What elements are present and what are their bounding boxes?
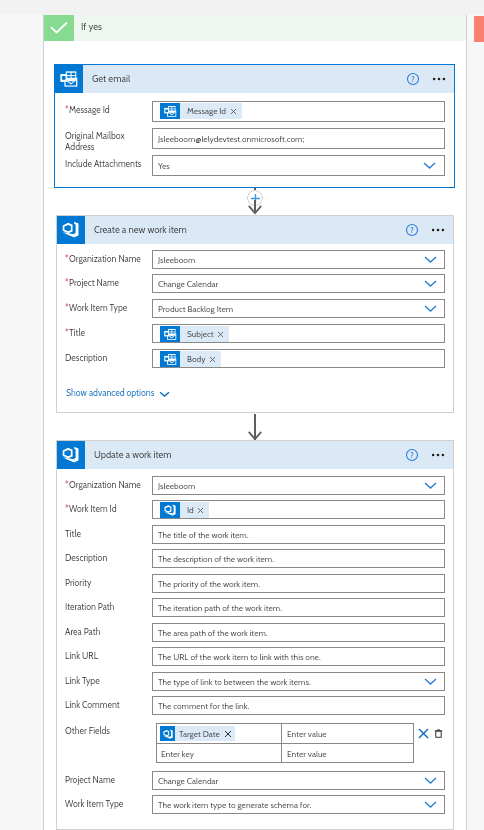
staticText: * (65, 328, 69, 339)
staticText: If yes (81, 21, 102, 32)
staticText: * (65, 480, 69, 491)
button[interactable]: Clear (416, 726, 430, 740)
staticText: Organization Name (69, 254, 141, 265)
staticText: ? (411, 74, 415, 84)
staticText: Jsleeboom@lelydevtest.onmicrosoft.com; (158, 134, 305, 144)
button[interactable]: Insert a new step (247, 190, 263, 206)
staticText: Link Comment (65, 700, 120, 711)
staticText: ? (410, 450, 414, 460)
staticText: Area Path (65, 627, 101, 638)
staticText: * (65, 278, 69, 289)
button[interactable]: Body (152, 349, 445, 368)
staticText: Project Name (65, 775, 116, 786)
staticText: Create a new work item (94, 224, 187, 235)
staticText: Jsleeboom (158, 255, 196, 265)
button[interactable]: Yes (152, 155, 445, 176)
button[interactable]: The description of the work item. (152, 549, 445, 568)
staticText: Subject (187, 329, 214, 339)
button[interactable]: Help (403, 69, 423, 89)
staticText: Change Calendar (158, 776, 219, 786)
staticText: Enter value (287, 749, 327, 759)
button[interactable]: The URL of the work item to link with th… (152, 647, 445, 666)
staticText: Include Attachments (65, 159, 142, 170)
staticText: Message Id (69, 105, 110, 116)
staticText: Target Date (179, 729, 220, 739)
button[interactable]: The work item type to generate schema fo… (152, 795, 445, 814)
button[interactable]: The priority of the work item. (152, 574, 445, 593)
staticText: Work Item Type (69, 303, 128, 314)
button[interactable]: More options (428, 220, 448, 240)
button[interactable]: Jsleeboom (152, 476, 445, 495)
button[interactable]: Help (402, 220, 422, 240)
staticText: Other Fields (65, 726, 110, 737)
staticText: * (65, 504, 69, 515)
button[interactable]: Message Id (152, 101, 445, 122)
staticText: Change Calendar (158, 279, 219, 289)
button[interactable]: The area path of the work item. (152, 623, 445, 642)
button[interactable]: More options (429, 69, 449, 89)
staticText: The URL of the work item to link with th… (158, 652, 321, 662)
button[interactable]: The comment for the link. (152, 696, 445, 715)
button[interactable]: Jsleeboom (152, 250, 445, 269)
staticText: Priority (65, 578, 92, 589)
staticText: Enter key (161, 749, 194, 759)
staticText: The title of the work item. (158, 530, 249, 540)
staticText: The description of the work item. (158, 554, 274, 564)
staticText: The comment for the link. (158, 701, 250, 711)
staticText: Work Item Type (65, 799, 124, 810)
button[interactable] (44, 15, 466, 41)
button[interactable]: Product Backlog Item (152, 299, 445, 318)
staticText: Id (187, 505, 194, 515)
staticText: Message Id (187, 106, 227, 116)
button[interactable]: The title of the work item. (152, 525, 445, 544)
staticText: Original Mailbox (65, 131, 125, 142)
staticText: Organization Name (69, 480, 141, 491)
staticText: The iteration path of the work item. (158, 603, 282, 613)
staticText: Description (65, 553, 108, 564)
button[interactable]: Get email (54, 64, 455, 93)
staticText: ? (410, 225, 414, 235)
button[interactable]: Show advanced options (66, 388, 169, 399)
staticText: Description (65, 353, 108, 364)
staticText: Yes (158, 161, 170, 171)
button[interactable]: Subject (152, 324, 445, 343)
staticText: Get email (92, 73, 131, 84)
staticText: Project Name (69, 278, 120, 289)
staticText: Address (65, 142, 95, 153)
button[interactable]: The iteration path of the work item. (152, 598, 445, 617)
staticText: Body (187, 354, 206, 364)
button[interactable]: Change Calendar (152, 274, 445, 293)
button[interactable]: More options (428, 445, 448, 465)
staticText: * (65, 105, 69, 116)
staticText: Link Type (65, 676, 100, 687)
staticText: Title (69, 328, 85, 339)
button[interactable]: Id (152, 500, 445, 519)
staticText: Update a work item (94, 449, 172, 460)
staticText: Work Item Id (69, 504, 117, 515)
staticText: Link URL (65, 651, 99, 662)
button[interactable]: The type of link to between the work ite… (152, 672, 445, 691)
button[interactable]: Jsleeboom@lelydevtest.onmicrosoft.com; (152, 128, 445, 149)
staticText: The area path of the work item. (158, 628, 268, 638)
staticText: Product Backlog Item (158, 304, 234, 314)
button[interactable]: Change Calendar (152, 771, 445, 790)
staticText: * (65, 254, 69, 265)
staticText: The type of link to between the work ite… (158, 677, 311, 687)
staticText: Jsleeboom (158, 481, 196, 491)
button[interactable]: Create a new work item (56, 215, 454, 244)
staticText: The priority of the work item. (158, 579, 260, 589)
button[interactable]: Delete (431, 726, 445, 740)
staticText: Iteration Path (65, 602, 115, 613)
staticText: Show advanced options (66, 388, 155, 399)
button[interactable]: Help (402, 445, 422, 465)
staticText: Enter value (287, 729, 327, 739)
staticText: * (65, 303, 69, 314)
staticText: The work item type to generate schema fo… (158, 800, 312, 810)
button[interactable]: Update a work item (56, 440, 454, 469)
staticText: Title (65, 529, 81, 540)
